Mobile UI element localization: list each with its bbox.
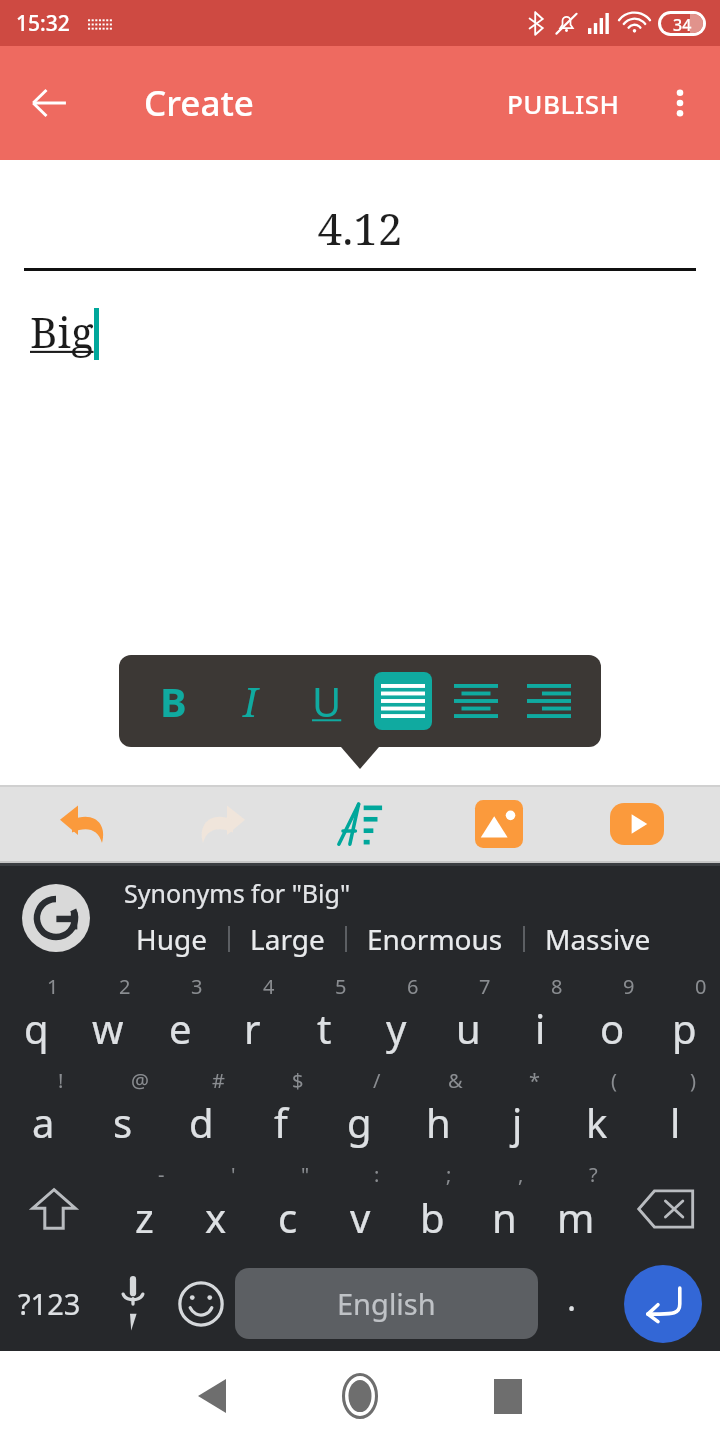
button[interactable]: Enter	[624, 1265, 702, 1343]
staticText: n	[492, 1190, 517, 1244]
button[interactable]: Align center	[447, 672, 505, 730]
staticText: t	[317, 1001, 332, 1055]
button[interactable]: ?123	[0, 1256, 99, 1351]
staticText: f	[274, 1095, 288, 1149]
button[interactable]: Back	[18, 72, 80, 134]
button[interactable]: Recents	[448, 1356, 568, 1436]
button[interactable]: Align right	[520, 672, 578, 730]
button[interactable]: #	[162, 1067, 241, 1161]
button[interactable]: ,	[468, 1161, 540, 1256]
button[interactable]: $	[241, 1067, 320, 1161]
button[interactable]: 2	[72, 973, 144, 1067]
staticText: d	[189, 1095, 214, 1149]
button[interactable]: !	[4, 1067, 83, 1161]
button[interactable]: 4	[216, 973, 288, 1067]
staticText: c	[278, 1190, 298, 1244]
button[interactable]: Grammarly	[20, 882, 92, 954]
staticText: U	[312, 674, 342, 728]
button[interactable]: Home	[300, 1356, 420, 1436]
button[interactable]: "	[252, 1161, 324, 1256]
staticText: 2	[119, 973, 131, 1000]
button[interactable]: Massive	[533, 918, 663, 960]
staticText: )	[690, 1067, 696, 1094]
button[interactable]: Large	[238, 918, 337, 960]
button[interactable]: ;	[396, 1161, 468, 1256]
staticText: k	[586, 1095, 608, 1149]
staticText: 4.12	[24, 198, 696, 258]
button[interactable]: Redo	[185, 786, 259, 862]
button[interactable]: )	[636, 1067, 715, 1161]
button[interactable]: Huge	[124, 918, 220, 960]
button[interactable]: 1	[0, 973, 72, 1067]
button[interactable]: *	[478, 1067, 557, 1161]
staticText: z	[135, 1190, 154, 1244]
button[interactable]: I	[219, 670, 281, 732]
staticText: #	[212, 1067, 225, 1094]
staticText: 4	[263, 973, 275, 1000]
button[interactable]: 6	[360, 973, 432, 1067]
staticText: j	[512, 1095, 523, 1149]
button[interactable]: ?	[540, 1161, 612, 1256]
button[interactable]: &	[399, 1067, 478, 1161]
button[interactable]: 8	[504, 973, 576, 1067]
staticText: 6	[407, 973, 419, 1000]
button[interactable]: Align left	[374, 672, 432, 730]
staticText: r	[244, 1001, 261, 1055]
button[interactable]: B	[142, 670, 204, 732]
button[interactable]: @	[83, 1067, 162, 1161]
staticText: 3	[191, 973, 203, 1000]
button[interactable]: Shift	[0, 1161, 108, 1256]
staticText: 7	[479, 973, 491, 1000]
button[interactable]: (	[557, 1067, 636, 1161]
staticText: Huge	[136, 920, 208, 958]
button[interactable]: :	[324, 1161, 396, 1256]
button[interactable]: 7	[432, 973, 504, 1067]
button[interactable]: /	[320, 1067, 399, 1161]
button[interactable]: More options	[650, 73, 710, 133]
button[interactable]: English	[235, 1268, 538, 1339]
staticText: I	[243, 674, 258, 728]
button[interactable]: Undo	[46, 786, 120, 862]
button[interactable]: Enormous	[355, 918, 515, 960]
staticText: .	[567, 1275, 577, 1321]
staticText: 5	[335, 973, 347, 1000]
button[interactable]: Back	[152, 1356, 272, 1436]
button[interactable]: 0	[648, 973, 720, 1067]
button[interactable]: U	[296, 670, 358, 732]
staticText: "	[301, 1161, 310, 1188]
staticText: q	[24, 1001, 49, 1055]
staticText: g	[347, 1095, 372, 1149]
staticText: p	[672, 1001, 697, 1055]
staticText: e	[169, 1001, 192, 1055]
staticText: &	[448, 1067, 463, 1094]
staticText: ?123	[18, 1284, 81, 1323]
button[interactable]: Insert image	[462, 786, 536, 862]
staticText: B	[160, 674, 187, 728]
button[interactable]: -	[108, 1161, 180, 1256]
button[interactable]: Emoji	[167, 1256, 235, 1351]
staticText: 1	[47, 973, 59, 1000]
staticText: '	[231, 1161, 236, 1188]
button[interactable]: .	[538, 1256, 606, 1351]
button[interactable]: Text formatting	[323, 786, 397, 862]
staticText: x	[205, 1190, 227, 1244]
button[interactable]: '	[180, 1161, 252, 1256]
staticText: Enormous	[367, 920, 503, 958]
staticText: :	[374, 1161, 380, 1188]
button[interactable]: 9	[576, 973, 648, 1067]
staticText: w	[92, 1001, 124, 1055]
staticText: Create	[144, 79, 254, 127]
button[interactable]: Voice input	[99, 1256, 167, 1351]
staticText: ?	[589, 1161, 598, 1188]
staticText: Massive	[545, 920, 651, 958]
staticText: 15:32	[16, 9, 70, 38]
staticText: /	[373, 1067, 381, 1094]
button[interactable]: 5	[288, 973, 360, 1067]
button[interactable]: PUBLISH	[499, 74, 628, 133]
button[interactable]: Insert video	[600, 786, 674, 862]
staticText: s	[113, 1095, 133, 1149]
button[interactable]: Backspace	[612, 1161, 720, 1256]
staticText: (	[611, 1067, 617, 1094]
staticText: ,	[518, 1161, 524, 1188]
button[interactable]: 3	[144, 973, 216, 1067]
